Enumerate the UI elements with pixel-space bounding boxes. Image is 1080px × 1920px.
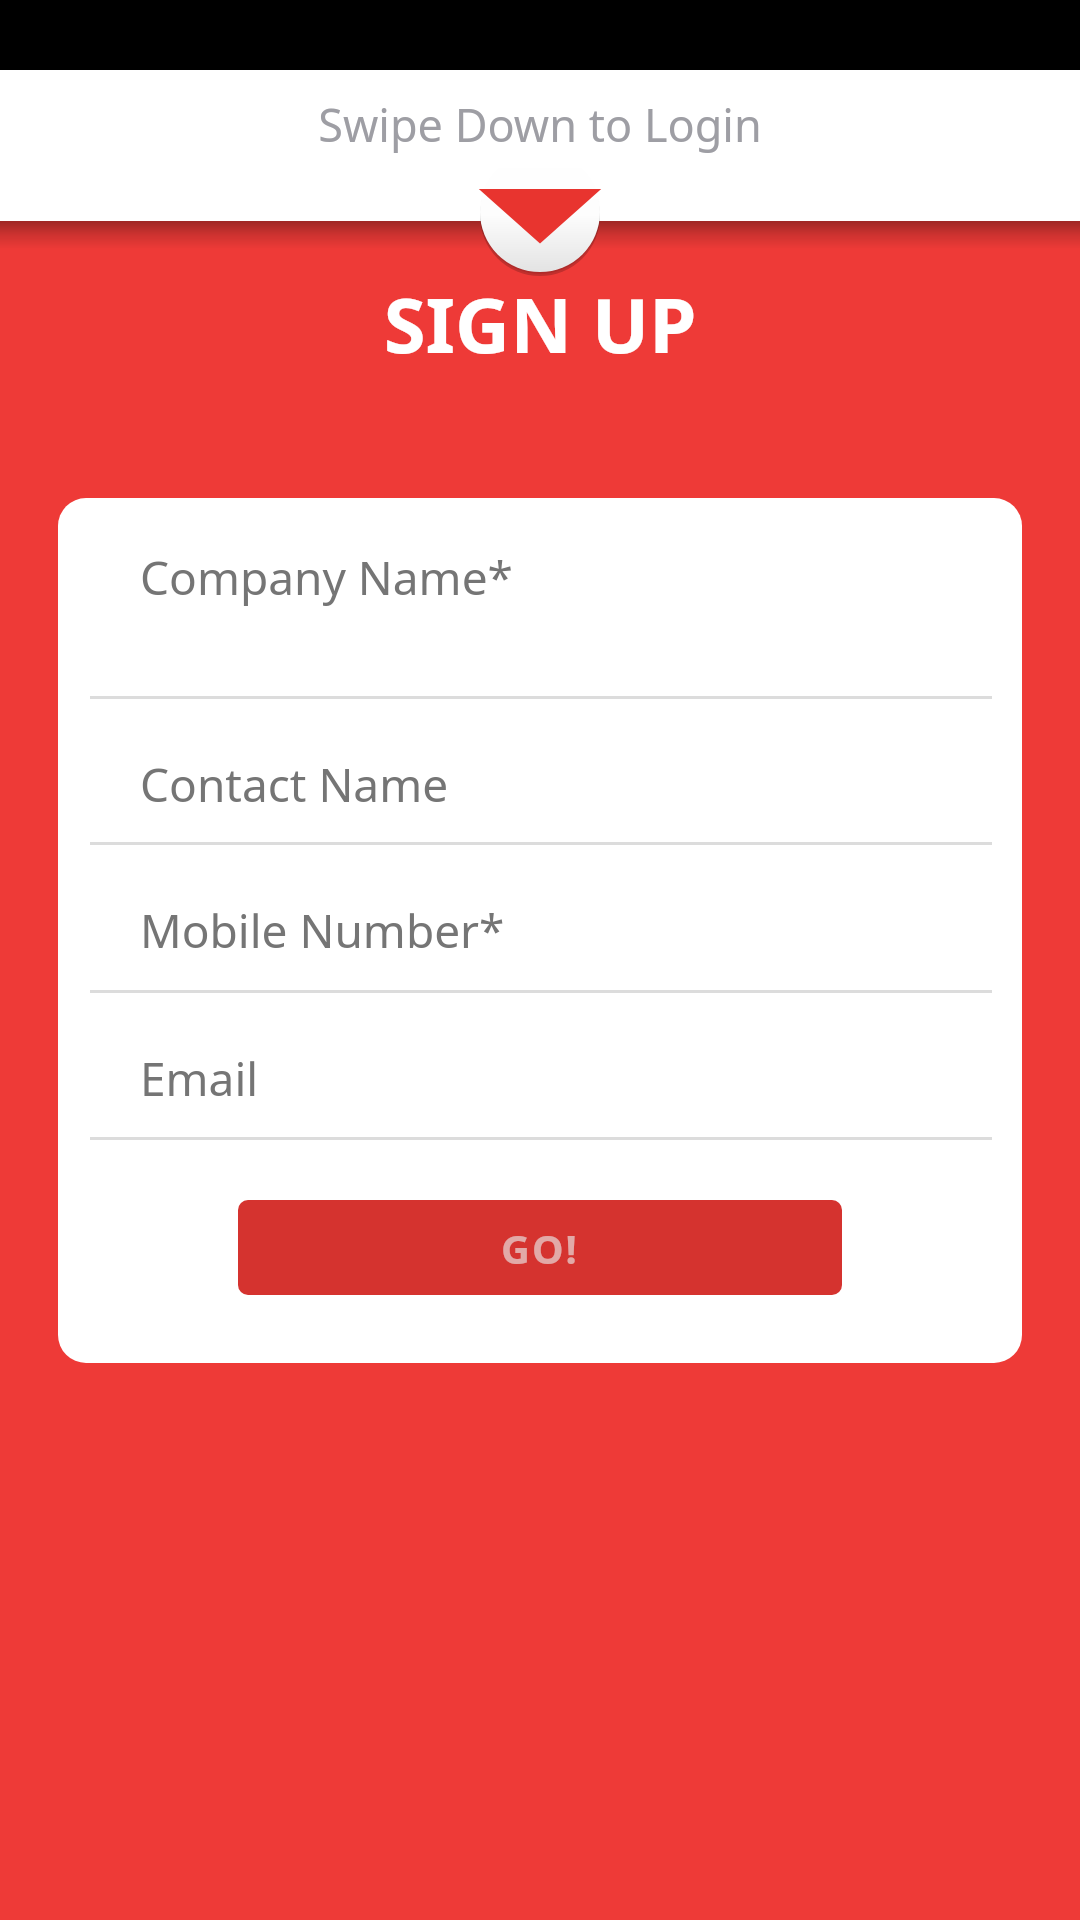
staticText: Swipe Down to Login	[0, 94, 1080, 155]
staticText: Mobile Number*	[140, 899, 505, 962]
staticText: Email	[140, 1047, 259, 1110]
staticText: GO!	[501, 1221, 579, 1275]
button[interactable]: GO!	[238, 1200, 842, 1295]
staticText: Company Name*	[140, 546, 513, 609]
button[interactable]: Email	[58, 993, 1022, 1140]
staticText: Contact Name	[140, 753, 449, 816]
button[interactable]: Swipe down to login	[480, 152, 600, 272]
button[interactable]: Mobile Number*	[58, 845, 1022, 993]
staticText: SIGN UP	[0, 272, 1080, 376]
button[interactable]: Contact Name	[58, 699, 1022, 845]
button[interactable]: Company Name*	[58, 498, 1022, 699]
